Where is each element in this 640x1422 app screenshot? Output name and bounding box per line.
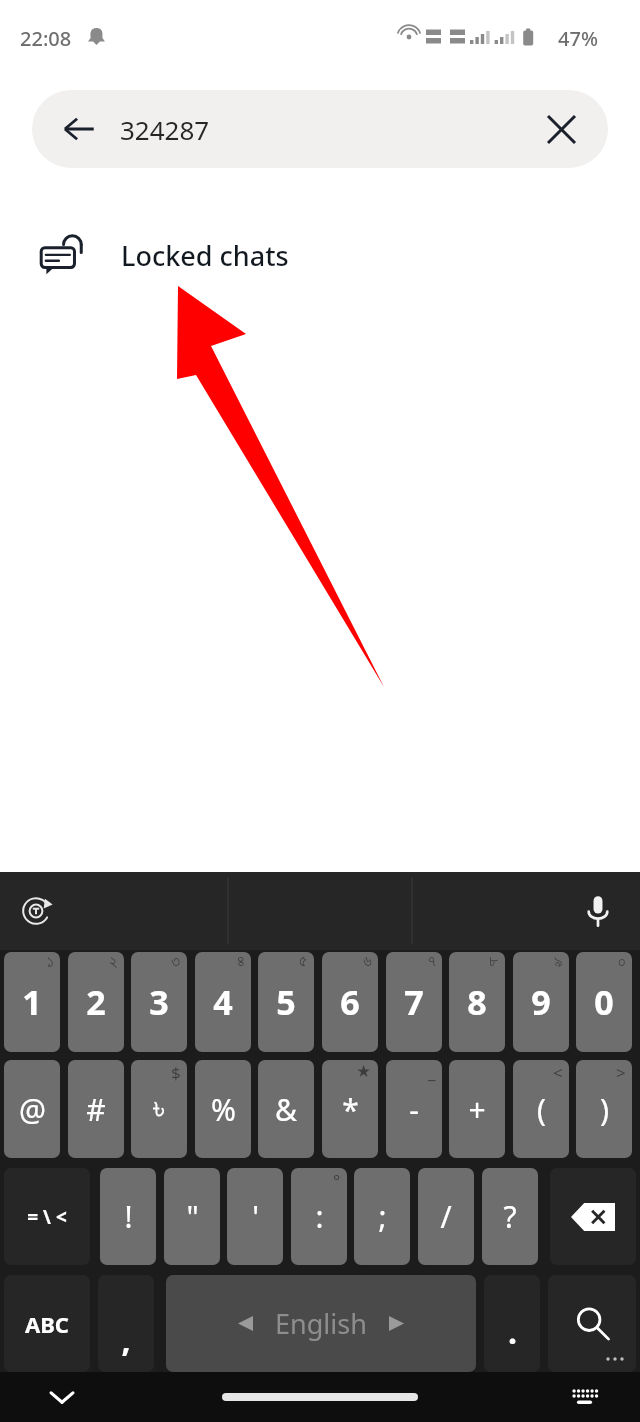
staticText: - [409,1089,419,1130]
button[interactable]: ' [227,1168,283,1265]
staticText: 3 [149,979,169,1025]
staticText: ৩ [171,953,181,970]
button[interactable]: _ [386,1060,442,1158]
staticText: 9 [531,979,551,1025]
staticText: * [342,1089,359,1130]
button[interactable]: > [576,1060,632,1158]
button[interactable]: + [449,1060,505,1158]
staticText: English [275,1305,367,1342]
button[interactable]: = \ < [4,1168,90,1265]
staticText: " [186,1196,199,1237]
button[interactable]: ৪ [195,952,251,1052]
button[interactable]: Home [222,1393,418,1401]
button[interactable]: ★ [322,1060,378,1158]
button[interactable]: ৫ [258,952,314,1052]
button[interactable]: ৮ [449,952,505,1052]
staticText: @ [19,1089,46,1130]
button[interactable]: ১ [4,952,60,1052]
button[interactable]: ৩ [131,952,187,1052]
button[interactable]: ০ [576,952,632,1052]
button[interactable]: Backspace [550,1168,636,1265]
staticText: # [86,1089,106,1130]
button[interactable]: Hide keyboard [36,1372,88,1422]
button[interactable]: ° [291,1168,347,1265]
staticText: ৯ [554,953,563,970]
button[interactable]: Voice input [570,883,626,939]
staticText: 6 [340,979,360,1025]
staticText: _ [428,1061,436,1084]
staticText: , [121,1318,131,1362]
button[interactable]: & [258,1060,314,1158]
button[interactable]: Switch input language [8,883,64,939]
staticText: ' [252,1196,259,1237]
staticText: 8 [467,979,487,1025]
button[interactable]: ? [482,1168,538,1265]
button[interactable]: ৬ [322,952,378,1052]
button[interactable]: ৭ [386,952,442,1052]
button[interactable]: , [98,1275,154,1372]
button[interactable]: < [513,1060,569,1158]
staticText: ABC [25,1309,69,1339]
button[interactable]: / [418,1168,474,1265]
button[interactable]: ABC [4,1275,90,1372]
staticText: 4 [213,979,233,1025]
staticText: & [275,1089,297,1130]
staticText: : [315,1196,324,1237]
staticText: ৬ [363,953,372,970]
staticText: + [468,1089,486,1130]
button[interactable]: ২ [68,952,124,1052]
staticText: ; [378,1196,387,1237]
staticText: % [211,1089,236,1130]
staticText: ২ [109,953,118,970]
button[interactable]: % [195,1060,251,1158]
staticText: ? [503,1196,517,1237]
staticText: ° [333,1169,341,1192]
button[interactable]: ৯ [513,952,569,1052]
staticText: ) [600,1089,609,1130]
button[interactable]: Locked chats [0,212,640,298]
button[interactable]: # [68,1060,124,1158]
staticText: 1 [22,979,42,1025]
staticText: ৭ [428,953,436,970]
staticText: ১ [47,953,54,970]
staticText: ০ [618,953,626,970]
staticText: 22:08 [20,25,72,52]
staticText: / [440,1196,452,1237]
staticText: ! [124,1196,133,1237]
button[interactable]: Search [548,1275,636,1372]
staticText: . [508,1310,517,1354]
staticText: 0 [594,979,614,1025]
button[interactable]: ! [100,1168,156,1265]
button[interactable]: Clear search [530,98,592,160]
button[interactable]: " [164,1168,220,1265]
staticText: 2 [86,979,106,1025]
staticText: 7 [404,979,424,1025]
button[interactable]: $ [131,1060,187,1158]
staticText: ৫ [299,953,308,970]
staticText: $ [171,1061,181,1084]
staticText: ৳ [153,1094,165,1124]
staticText: > [616,1061,626,1084]
button[interactable]: Back [48,98,110,160]
staticText: ★ [356,1061,372,1081]
button[interactable]: English [166,1275,476,1372]
staticText: ৮ [489,953,499,970]
button[interactable]: Change keyboard [558,1372,610,1422]
staticText: < [553,1061,563,1084]
staticText: 5 [276,979,296,1025]
staticText: ( [537,1089,546,1130]
staticText: ৪ [237,953,245,970]
staticText: Locked chats [121,237,289,274]
button[interactable]: ; [354,1168,410,1265]
button[interactable]: . [484,1275,540,1372]
staticText: 47% [558,25,598,52]
staticText: 324287 [120,112,210,147]
button[interactable]: @ [4,1060,60,1158]
staticText: = \ < [27,1204,67,1230]
